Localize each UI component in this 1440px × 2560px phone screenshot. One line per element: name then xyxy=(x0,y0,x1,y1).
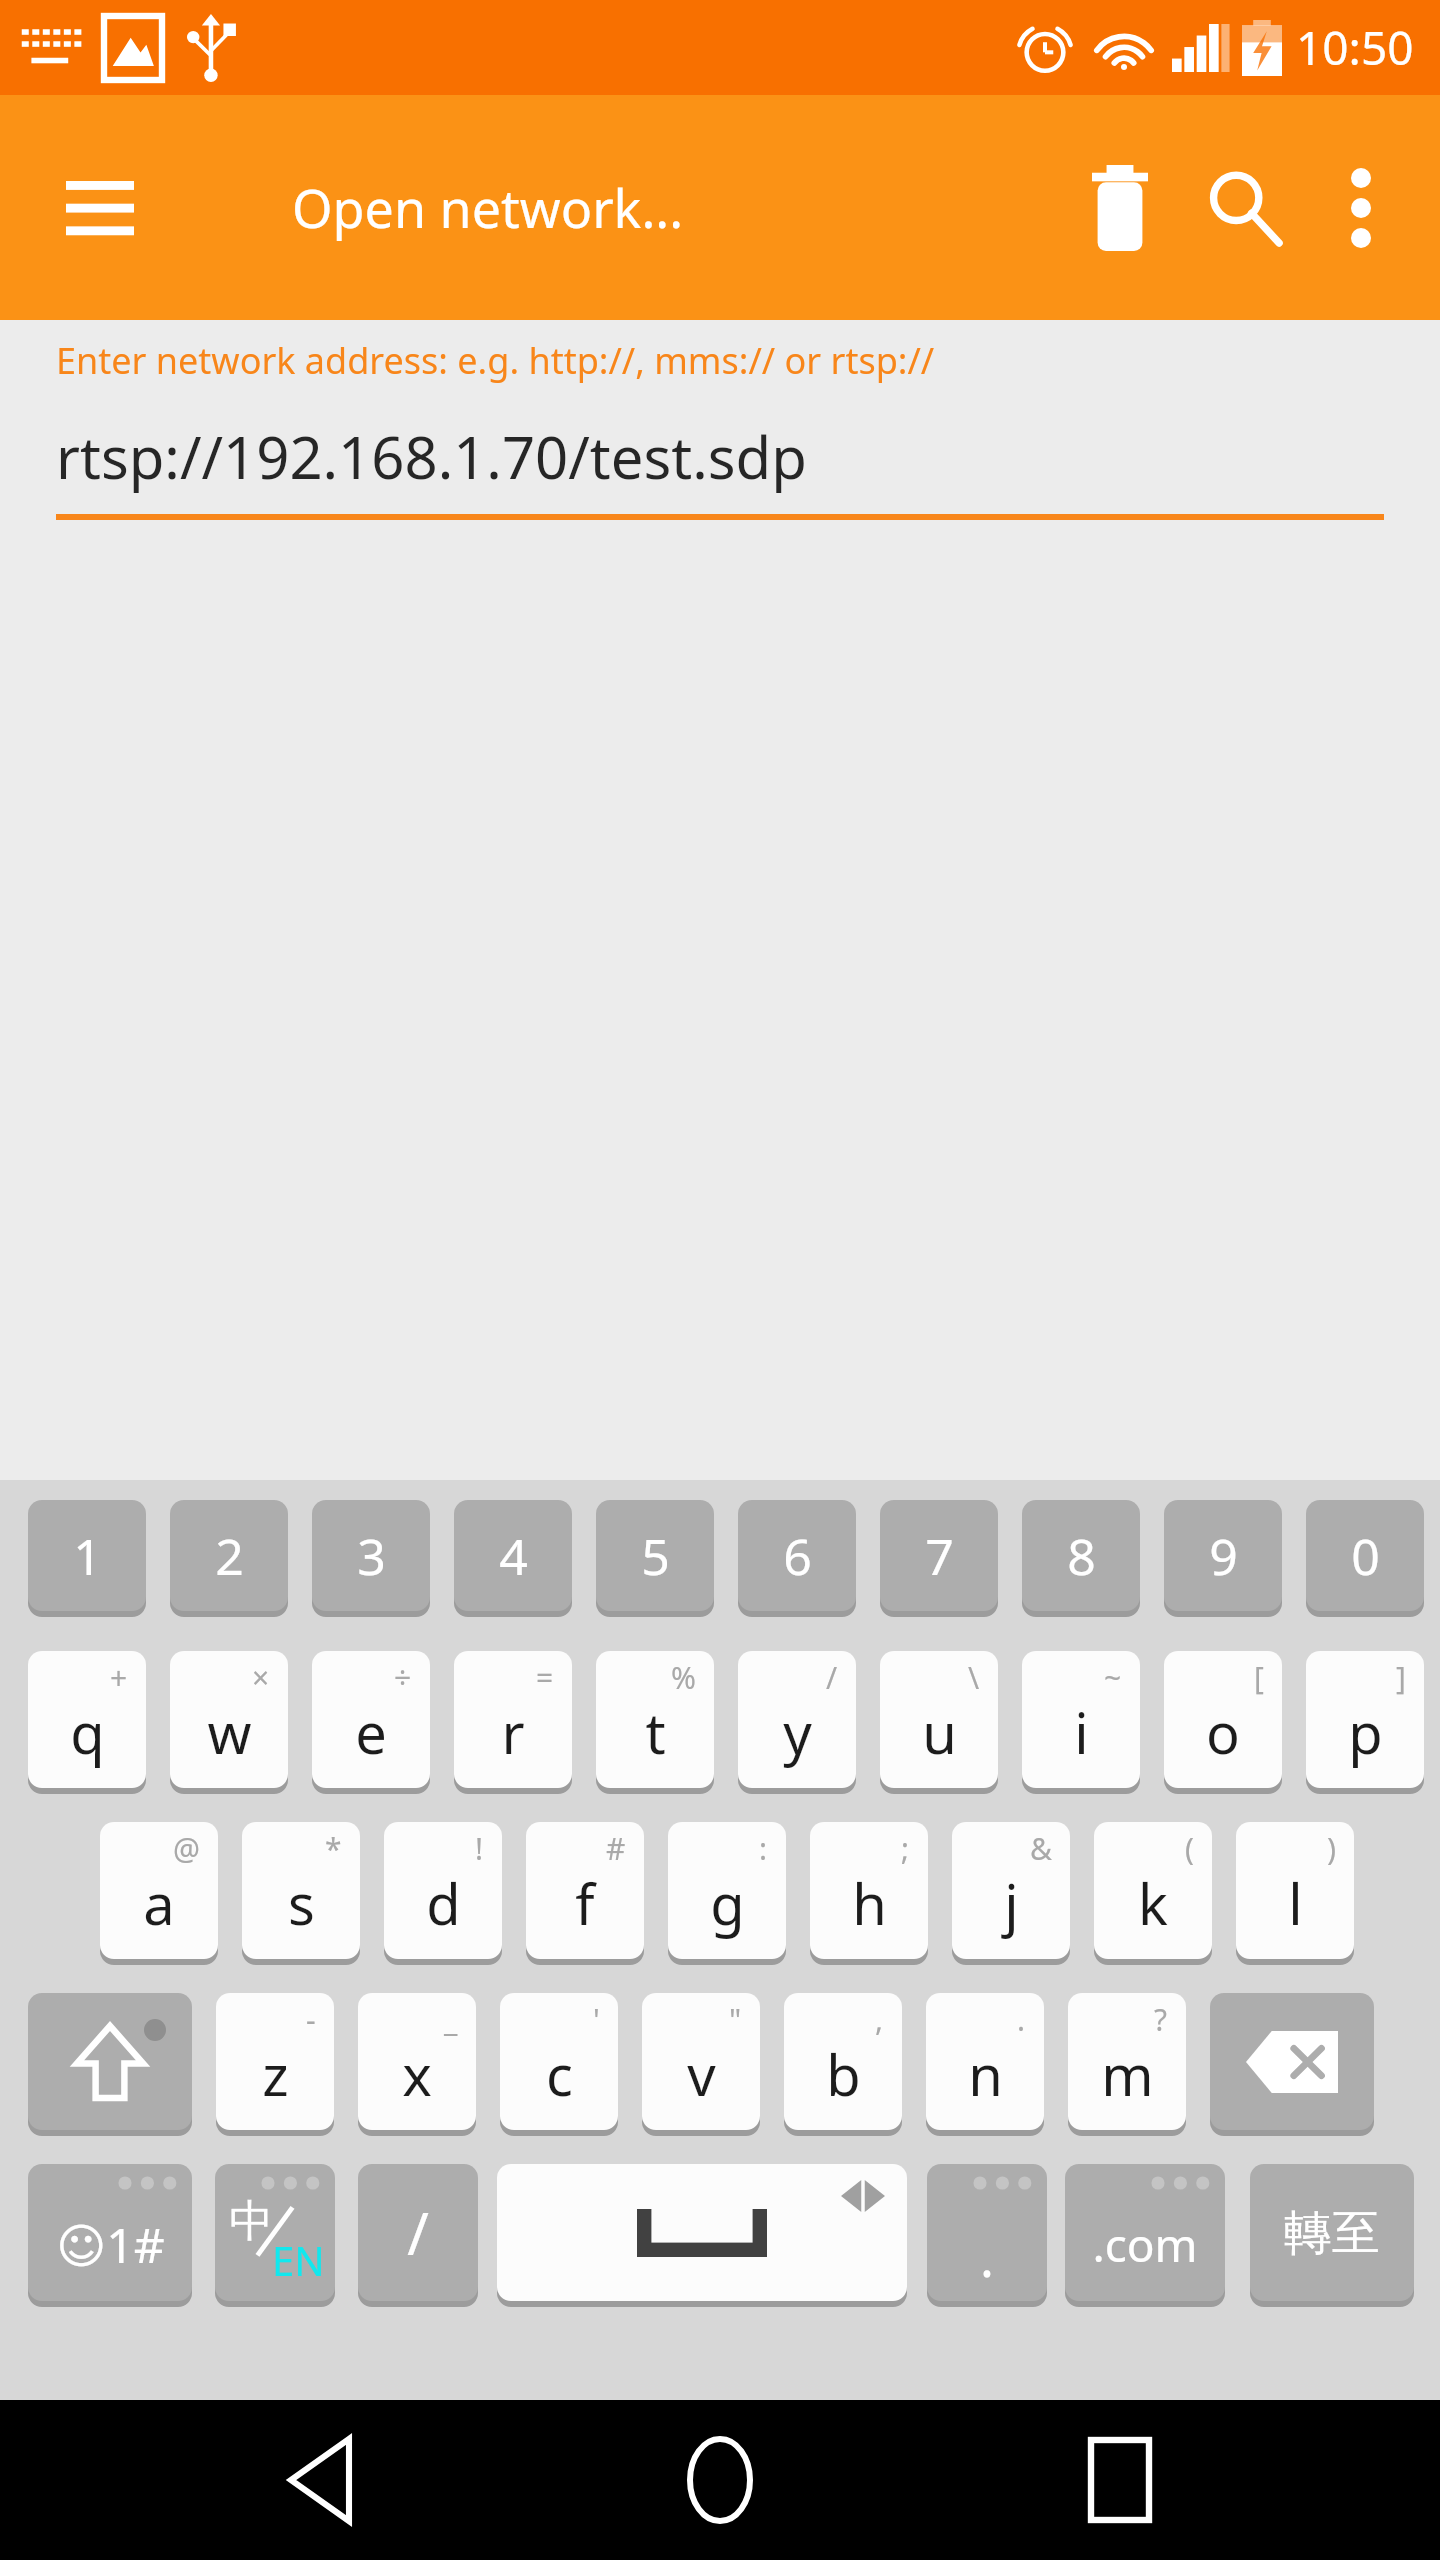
button[interactable]: + xyxy=(28,1651,146,1794)
staticText: EN xyxy=(272,2233,325,2287)
button[interactable]: @ xyxy=(100,1822,218,1965)
staticText: m xyxy=(1101,2036,1154,2112)
button[interactable]: Delete xyxy=(1058,146,1182,270)
staticText: × xyxy=(252,1657,270,1698)
button[interactable]: 9 xyxy=(1164,1500,1282,1617)
staticText: 0 xyxy=(1351,1522,1380,1590)
button[interactable]: 7 xyxy=(880,1500,998,1617)
button[interactable]: 0 xyxy=(1306,1500,1424,1617)
button[interactable]: ; xyxy=(810,1822,928,1965)
button[interactable]: Backspace xyxy=(1210,1993,1374,2136)
button[interactable]: * xyxy=(242,1822,360,1965)
staticText: " xyxy=(729,1999,742,2040)
button[interactable]: # xyxy=(526,1822,644,1965)
button[interactable]: Shift xyxy=(28,1993,192,2136)
staticText: t xyxy=(645,1694,666,1770)
staticText: a xyxy=(143,1865,175,1941)
staticText: v xyxy=(687,2036,716,2112)
staticText: s xyxy=(288,1865,315,1941)
staticText: * xyxy=(325,1828,342,1869)
button[interactable]: More options xyxy=(1306,153,1416,263)
button[interactable]: & xyxy=(952,1822,1070,1965)
button[interactable]: ( xyxy=(1094,1822,1212,1965)
button[interactable]: ) xyxy=(1236,1822,1354,1965)
button[interactable]: " xyxy=(642,1993,760,2136)
staticText: l xyxy=(1288,1865,1303,1941)
button[interactable]: _ xyxy=(358,1993,476,2136)
button[interactable]: Home xyxy=(640,2400,800,2560)
button[interactable]: / xyxy=(358,2164,478,2307)
button[interactable]: 5 xyxy=(596,1500,714,1617)
staticText: k xyxy=(1138,1865,1168,1941)
staticText: u xyxy=(922,1694,957,1770)
button[interactable]: 1 xyxy=(28,1500,146,1617)
staticText: z xyxy=(262,2036,289,2112)
button[interactable]: rtsp://192.168.1.70/test.sdp xyxy=(0,417,1440,496)
staticText: ( xyxy=(1185,1828,1194,1869)
button[interactable]: Back xyxy=(240,2400,400,2560)
button[interactable]: \ xyxy=(880,1651,998,1794)
button[interactable]: Recents xyxy=(1040,2400,1200,2560)
staticText: 7 xyxy=(925,1522,954,1590)
staticText: 轉至 xyxy=(1284,2203,1380,2263)
button[interactable]: 6 xyxy=(738,1500,856,1617)
staticText: ] xyxy=(1396,1657,1406,1698)
button[interactable]: ÷ xyxy=(312,1651,430,1794)
button[interactable]: ? xyxy=(1068,1993,1186,2136)
staticText: \ xyxy=(968,1657,980,1698)
button[interactable]: [ xyxy=(1164,1651,1282,1794)
button[interactable]: 4 xyxy=(454,1500,572,1617)
staticText: g xyxy=(710,1865,745,1941)
button[interactable]: Language xyxy=(215,2164,335,2307)
button[interactable]: . xyxy=(926,1993,1044,2136)
staticText: _ xyxy=(444,1999,458,2040)
button[interactable]: Period xyxy=(927,2164,1047,2307)
staticText: w xyxy=(207,1694,252,1770)
staticText: y xyxy=(783,1694,812,1770)
button[interactable]: ! xyxy=(384,1822,502,1965)
staticText: / xyxy=(407,2193,429,2272)
button[interactable]: % xyxy=(596,1651,714,1794)
staticText: 9 xyxy=(1209,1522,1238,1590)
button[interactable]: ' xyxy=(500,1993,618,2136)
staticText: p xyxy=(1348,1694,1383,1770)
staticText: 6 xyxy=(783,1522,812,1590)
staticText: = xyxy=(536,1657,554,1698)
button[interactable]: - xyxy=(216,1993,334,2136)
button[interactable]: 2 xyxy=(170,1500,288,1617)
button[interactable]: ] xyxy=(1306,1651,1424,1794)
button[interactable]: 8 xyxy=(1022,1500,1140,1617)
staticText: ! xyxy=(475,1828,484,1869)
staticText: ' xyxy=(593,1999,600,2040)
staticText: e xyxy=(355,1694,387,1770)
button[interactable]: 3 xyxy=(312,1500,430,1617)
staticText: 8 xyxy=(1067,1522,1096,1590)
staticText: c xyxy=(546,2036,573,2112)
staticText: # xyxy=(606,1828,626,1869)
button[interactable]: / xyxy=(738,1651,856,1794)
button[interactable]: Space xyxy=(497,2164,907,2307)
staticText: % xyxy=(671,1657,696,1698)
button[interactable]: Menu xyxy=(42,150,158,266)
staticText: d xyxy=(426,1865,461,1941)
staticText: ~ xyxy=(1104,1657,1122,1698)
button[interactable]: 轉至 xyxy=(1250,2164,1414,2307)
staticText: 2 xyxy=(215,1522,244,1590)
staticText: .com xyxy=(1092,2213,1198,2276)
button[interactable]: × xyxy=(170,1651,288,1794)
button[interactable]: ~ xyxy=(1022,1651,1140,1794)
staticText: 1 xyxy=(73,1522,102,1590)
staticText: r xyxy=(501,1694,525,1770)
button[interactable]: : xyxy=(668,1822,786,1965)
button[interactable]: .com xyxy=(1065,2164,1225,2307)
staticText: . xyxy=(980,2221,994,2292)
button[interactable]: Search xyxy=(1182,146,1306,270)
staticText: j xyxy=(1004,1865,1019,1941)
staticText: n xyxy=(968,2036,1003,2112)
staticText: i xyxy=(1074,1694,1089,1770)
button[interactable]: , xyxy=(784,1993,902,2136)
staticText: 10:50 xyxy=(1296,16,1414,79)
button[interactable]: Symbols xyxy=(28,2164,192,2307)
staticText: 3 xyxy=(357,1522,386,1590)
button[interactable]: = xyxy=(454,1651,572,1794)
